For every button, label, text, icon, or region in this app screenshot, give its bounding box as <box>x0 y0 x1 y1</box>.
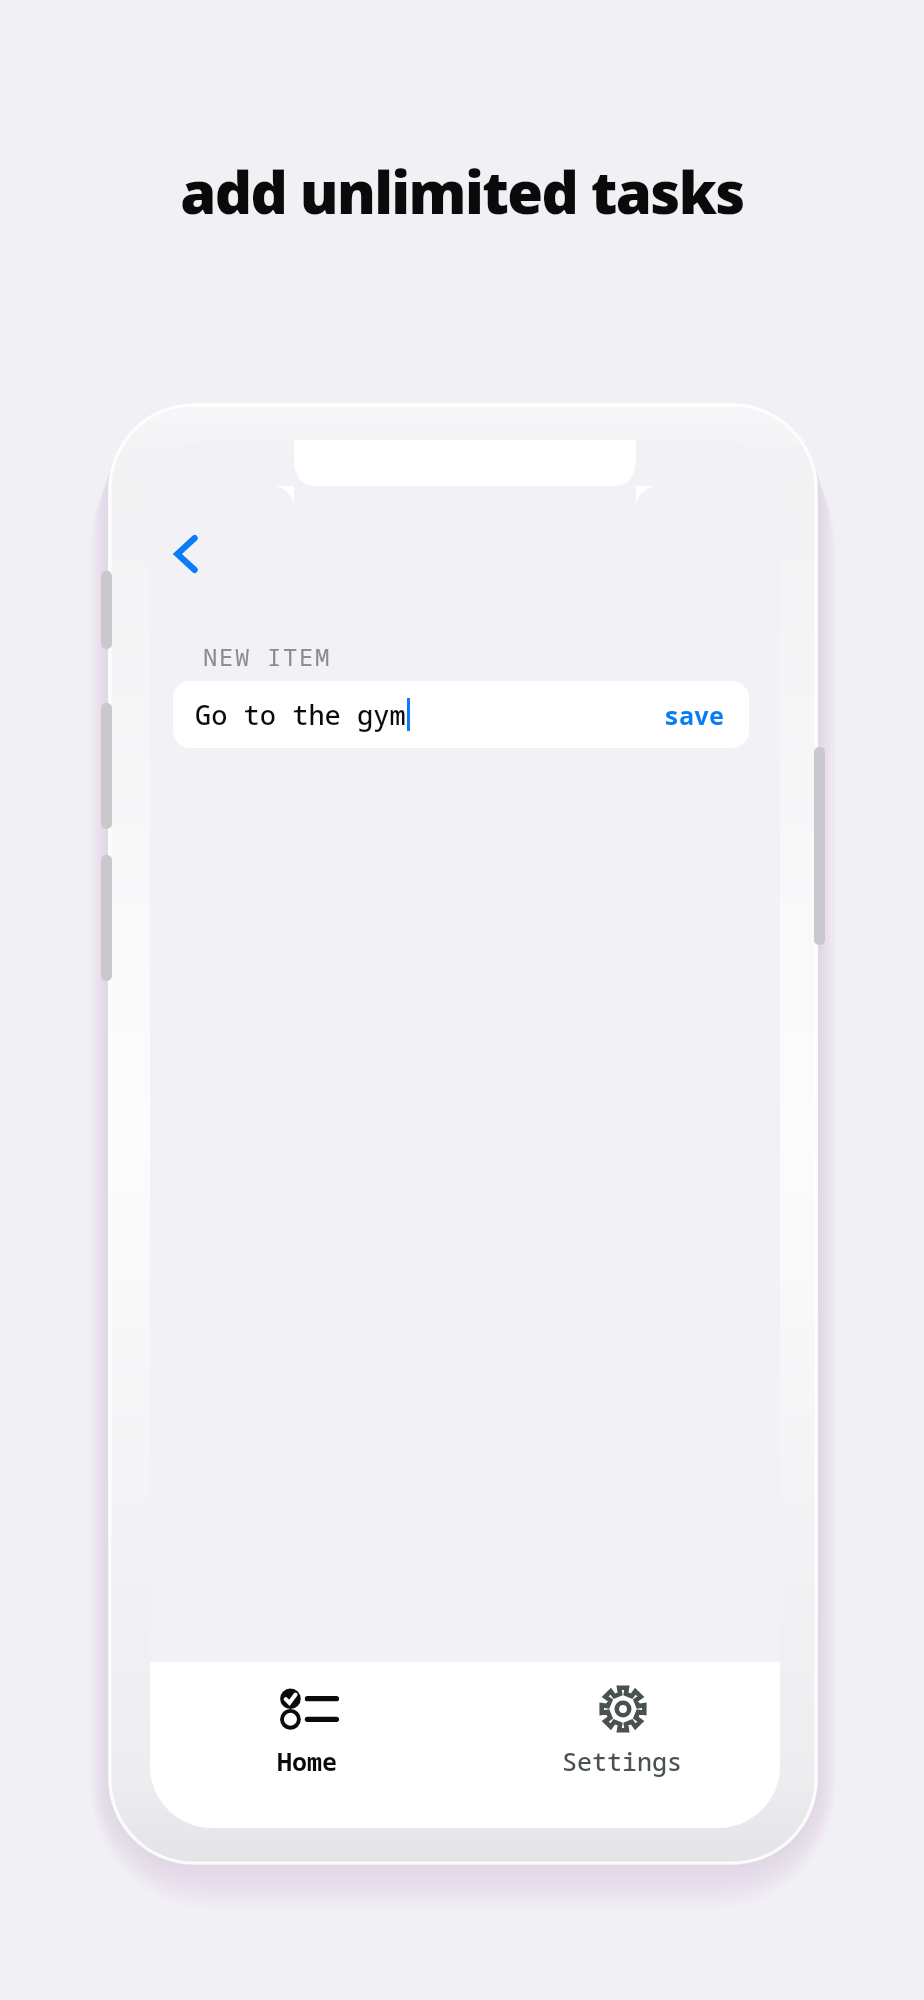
button[interactable]: Settings <box>465 1662 780 1828</box>
staticText: Go to the gym <box>195 696 406 733</box>
button[interactable]: Go to the gym <box>173 681 749 748</box>
button[interactable]: save <box>662 692 727 738</box>
staticText: NEW ITEM <box>203 640 331 673</box>
staticText: Home <box>277 1744 338 1778</box>
staticText: add unlimited tasks <box>0 152 924 231</box>
button[interactable]: Home <box>150 1662 465 1828</box>
button[interactable]: Back <box>158 526 214 582</box>
staticText: Settings <box>562 1744 683 1778</box>
staticText: save <box>664 698 725 732</box>
